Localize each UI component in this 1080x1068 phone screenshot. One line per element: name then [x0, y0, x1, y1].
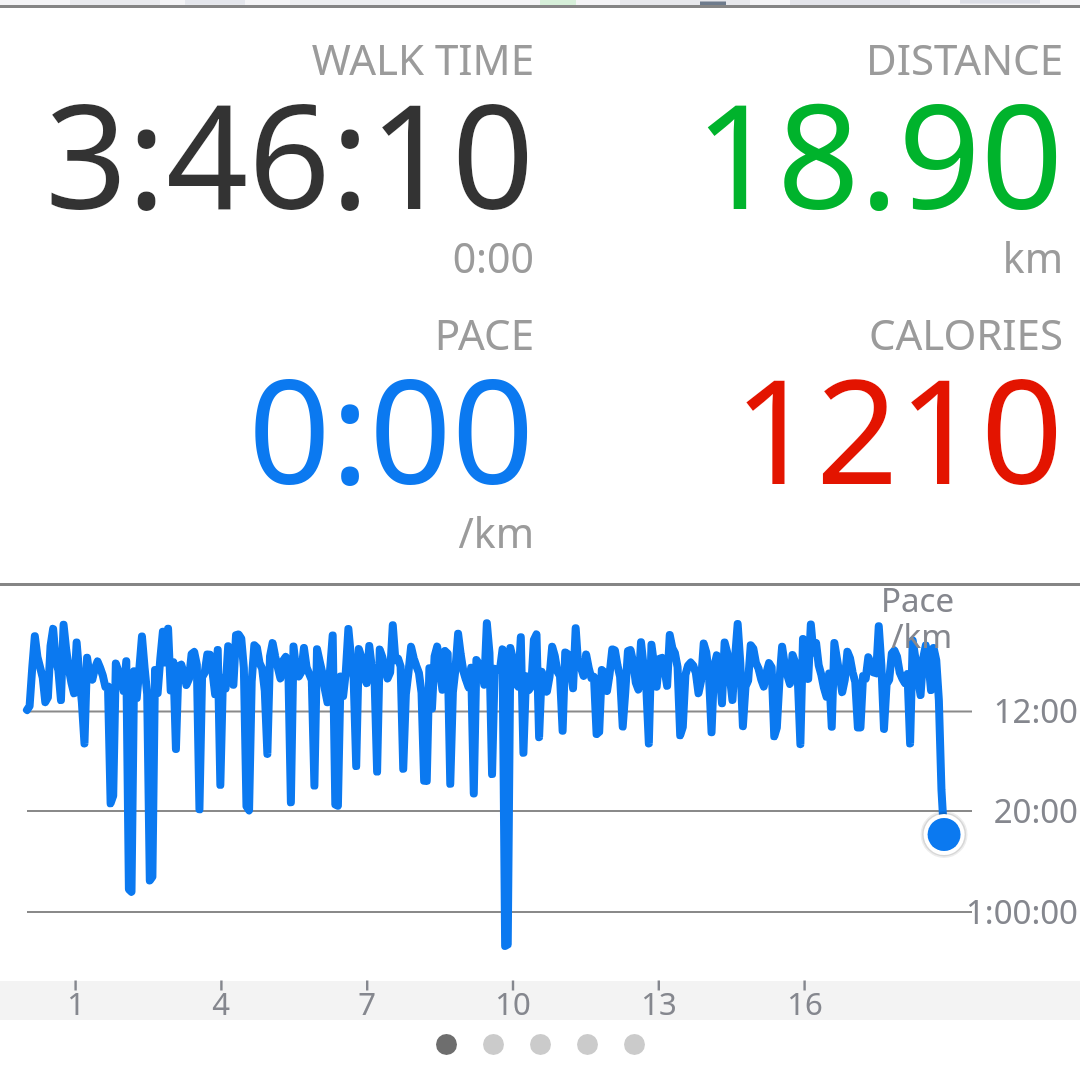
- button[interactable]: Page 1: [436, 1034, 457, 1055]
- staticText: CALORIES: [463, 305, 1063, 362]
- staticText: /km: [0, 504, 534, 560]
- staticText: WALK TIME: [0, 30, 534, 87]
- button[interactable]: Page 3: [530, 1034, 551, 1055]
- staticText: 10: [463, 982, 563, 1024]
- staticText: Pace: [354, 577, 954, 622]
- button[interactable]: DISTANCE 18.90 km: [540, 22, 1080, 294]
- button[interactable]: CALORIES 1210: [540, 297, 1080, 569]
- staticText: 1: [26, 982, 126, 1024]
- staticText: km: [463, 229, 1063, 285]
- staticText: 18.90: [463, 55, 1063, 251]
- button[interactable]: Page 5: [624, 1034, 645, 1055]
- staticText: DISTANCE: [463, 30, 1063, 87]
- staticText: /km: [352, 613, 952, 658]
- staticText: 0:00: [0, 330, 534, 526]
- staticText: 7: [317, 982, 417, 1024]
- button[interactable]: Route map: [0, 0, 1080, 6]
- button[interactable]: Page 4: [577, 1034, 598, 1055]
- staticText: 20:00: [478, 788, 1078, 833]
- button[interactable]: Pace chart: [0, 585, 1080, 981]
- button[interactable]: PACE 0:00 /km: [0, 297, 540, 569]
- staticText: 12:00: [478, 688, 1078, 733]
- button[interactable]: Page 2: [483, 1034, 504, 1055]
- staticText: 1210: [463, 330, 1063, 526]
- staticText: 1:00:00: [478, 889, 1078, 934]
- staticText: 16: [755, 982, 855, 1024]
- staticText: PACE: [0, 305, 534, 362]
- staticText: 13: [609, 982, 709, 1024]
- staticText: 3:46:10: [0, 55, 534, 251]
- button[interactable]: WALK TIME 3:46:10 0:00: [0, 22, 540, 294]
- staticText: 0:00: [0, 229, 534, 285]
- staticText: 4: [171, 982, 271, 1024]
